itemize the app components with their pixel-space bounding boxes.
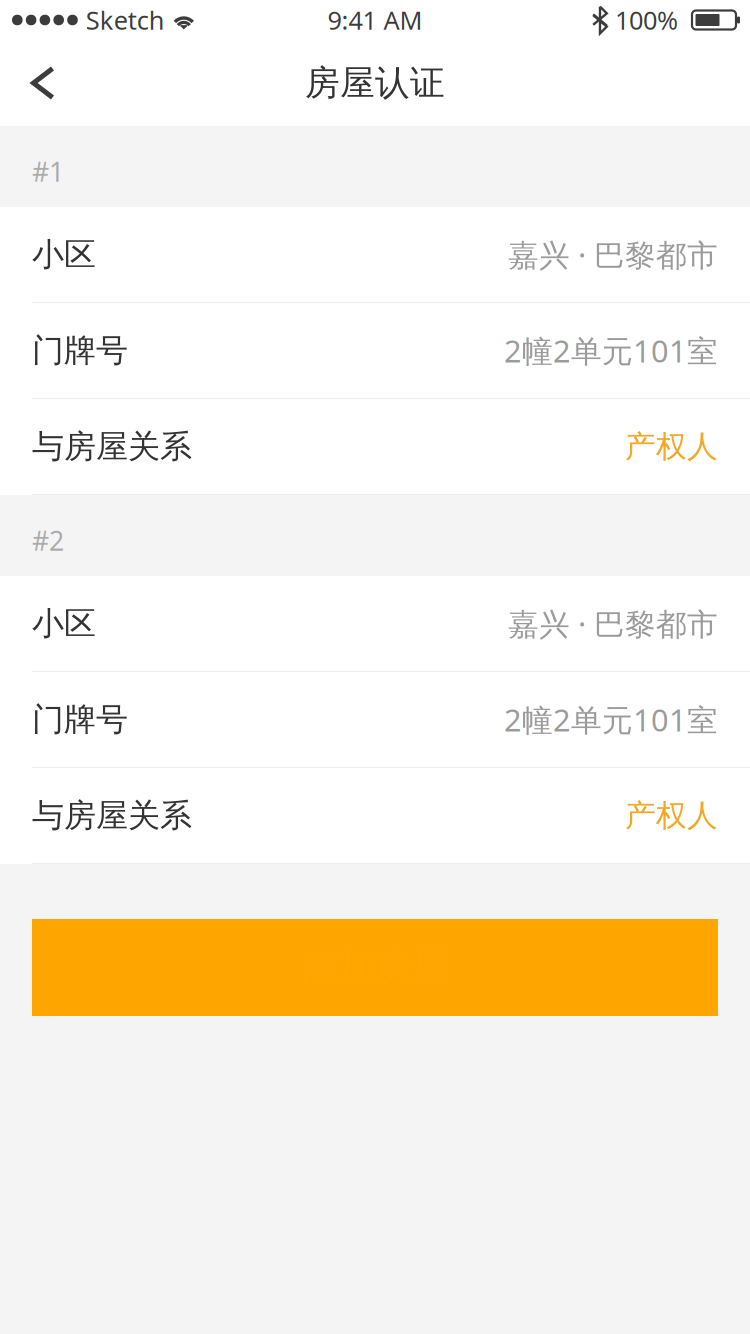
button[interactable]: 门牌号	[0, 672, 750, 768]
staticText: 小区	[32, 604, 96, 643]
staticText: 嘉兴 · 巴黎都市	[508, 234, 718, 275]
button[interactable]: Back	[0, 45, 77, 121]
staticText: 门牌号	[32, 700, 128, 739]
staticText: 9:41 AM	[327, 3, 422, 37]
staticText: 门牌号	[32, 331, 128, 370]
button[interactable]: 门牌号	[0, 303, 750, 399]
staticText: Sketch	[86, 3, 165, 37]
button[interactable]: 小区	[0, 207, 750, 303]
staticText: 与房屋关系	[32, 796, 192, 835]
staticText: 100%	[615, 3, 678, 37]
button[interactable]: 与房屋关系	[0, 399, 750, 495]
staticText: 小区	[32, 235, 96, 274]
button[interactable]: 小区	[0, 576, 750, 672]
staticText: #2	[32, 523, 64, 558]
staticText: 产权人	[625, 428, 718, 465]
staticText: 与房屋关系	[32, 427, 192, 466]
staticText: 房屋认证	[305, 62, 445, 104]
staticText: 2幢2单元101室	[504, 699, 718, 740]
button[interactable]: 与房屋关系	[0, 768, 750, 864]
staticText: 嘉兴 · 巴黎都市	[508, 603, 718, 644]
staticText: 产权人	[625, 797, 718, 834]
staticText: 2幢2单元101室	[504, 330, 718, 371]
staticText: #1	[32, 154, 64, 189]
